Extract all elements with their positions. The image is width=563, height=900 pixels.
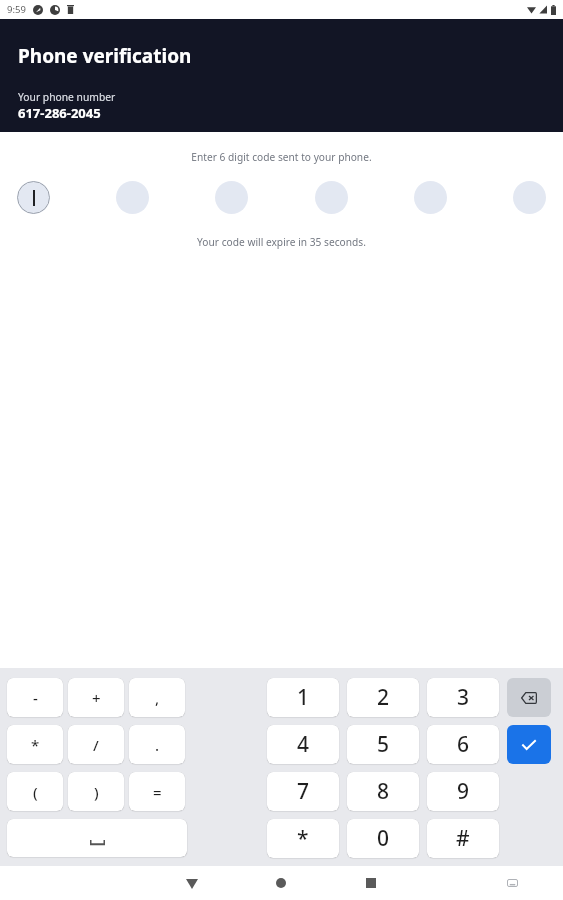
button[interactable]: . [129,725,185,764]
staticText: 5 [377,730,390,759]
button[interactable]: Backspace [507,678,551,717]
button[interactable]: # [427,819,499,858]
staticText: = [153,782,162,802]
staticText: / [93,735,99,755]
staticText: 617-286-2045 [18,104,101,122]
button[interactable]: 7 [267,772,339,811]
staticText: 1 [297,683,310,712]
button[interactable] [513,181,546,214]
staticText: 2 [377,683,390,712]
staticText: , [155,688,160,708]
button[interactable]: ( [7,772,63,811]
button[interactable]: 6 [427,725,499,764]
staticText: * [297,824,309,853]
staticText: - [33,688,38,708]
button[interactable]: 3 [427,678,499,717]
staticText: Phone verification [18,43,192,69]
button[interactable]: 2 [347,678,419,717]
button[interactable] [315,181,348,214]
button[interactable]: - [7,678,63,717]
button[interactable]: 5 [347,725,419,764]
button[interactable]: 8 [347,772,419,811]
button[interactable]: Back [177,868,207,898]
staticText: 8 [377,777,390,806]
staticText: Your code will expire in 35 seconds. [0,235,563,249]
button[interactable] [414,181,447,214]
staticText: . [155,735,160,755]
staticText: 4 [297,730,310,759]
button[interactable] [17,181,50,214]
button[interactable]: 4 [267,725,339,764]
staticText: 6 [457,730,470,759]
button[interactable]: = [129,772,185,811]
staticText: Enter 6 digit code sent to your phone. [0,150,563,164]
button[interactable]: 0 [347,819,419,858]
staticText: 7 [297,777,310,806]
button[interactable]: Space [7,819,187,857]
staticText: 3 [457,683,470,712]
staticText: # [456,824,470,853]
button[interactable]: , [129,678,185,717]
button[interactable]: / [68,725,124,764]
staticText: 9 [457,777,470,806]
staticText: + [92,688,101,708]
button[interactable]: 9 [427,772,499,811]
button[interactable] [116,181,149,214]
staticText: ) [94,782,99,802]
staticText: 9:59 [7,3,26,16]
button[interactable]: + [68,678,124,717]
button[interactable]: Done [507,725,551,764]
button[interactable]: Home [266,868,296,898]
button[interactable]: ) [68,772,124,811]
button[interactable]: * [267,819,339,858]
button[interactable] [215,181,248,214]
button[interactable]: * [7,725,63,764]
button[interactable]: Switch keyboard [497,868,527,898]
staticText: * [31,735,40,755]
button[interactable]: Recents [356,868,386,898]
button[interactable]: 1 [267,678,339,717]
staticText: Your phone number [18,90,116,104]
staticText: ( [33,782,38,802]
staticText: 0 [377,824,390,853]
